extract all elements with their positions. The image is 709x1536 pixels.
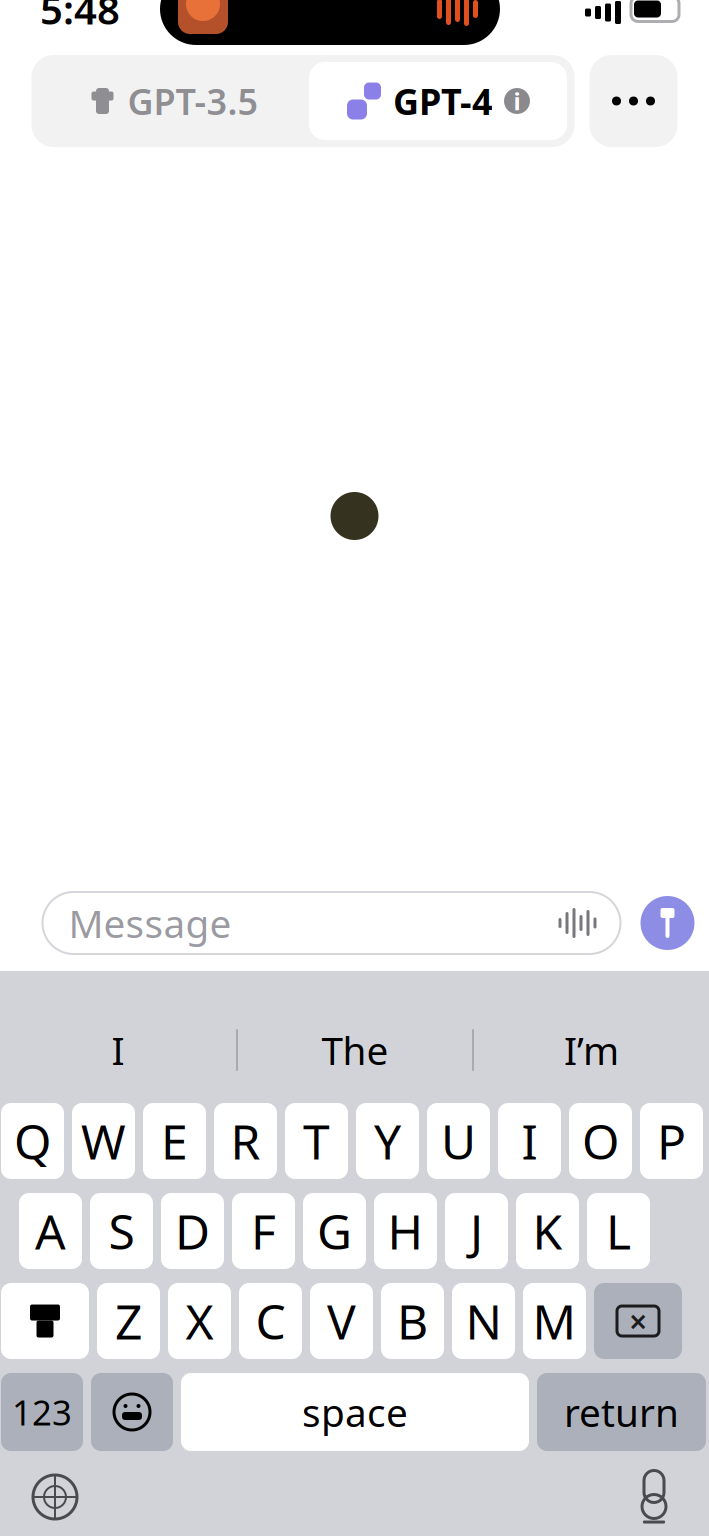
staticText: R: [230, 1109, 260, 1173]
button[interactable]: I’m: [474, 1007, 709, 1093]
button[interactable]: X: [168, 1283, 231, 1359]
button[interactable]: More options: [589, 55, 677, 147]
button[interactable]: R: [214, 1103, 277, 1179]
staticText: U: [441, 1109, 476, 1173]
button[interactable]: M: [523, 1283, 586, 1359]
button[interactable]: Z: [97, 1283, 160, 1359]
button[interactable]: Q: [1, 1103, 64, 1179]
button[interactable]: K: [516, 1193, 579, 1269]
staticText: O: [582, 1109, 619, 1173]
staticText: F: [251, 1199, 276, 1263]
button[interactable]: Dictate: [599, 1457, 709, 1536]
button[interactable]: U: [427, 1103, 490, 1179]
staticText: I’m: [564, 1024, 619, 1076]
button[interactable]: P: [640, 1103, 703, 1179]
button[interactable]: 123: [1, 1373, 83, 1451]
staticText: D: [175, 1199, 210, 1263]
button[interactable]: I: [0, 1007, 236, 1093]
staticText: W: [81, 1109, 126, 1173]
staticText: The: [321, 1024, 388, 1076]
button[interactable]: Emoji: [91, 1373, 173, 1451]
staticText: V: [327, 1289, 356, 1353]
staticText: Z: [115, 1289, 142, 1353]
button[interactable]: Y: [356, 1103, 419, 1179]
staticText: C: [255, 1289, 285, 1353]
staticText: P: [657, 1109, 686, 1173]
staticText: ×: [629, 1300, 647, 1342]
button[interactable]: H: [374, 1193, 437, 1269]
staticText: B: [397, 1289, 428, 1353]
staticText: return: [564, 1386, 679, 1438]
button[interactable]: N: [452, 1283, 515, 1359]
button[interactable]: The: [238, 1007, 472, 1093]
staticText: N: [465, 1289, 501, 1353]
button[interactable]: A: [19, 1193, 82, 1269]
button[interactable]: L: [587, 1193, 650, 1269]
staticText: I: [521, 1109, 537, 1173]
staticText: I: [111, 1024, 124, 1076]
button[interactable]: Shift: [1, 1283, 89, 1359]
staticText: T: [303, 1109, 330, 1173]
staticText: G: [317, 1199, 352, 1263]
button[interactable]: return: [537, 1373, 706, 1451]
staticText: GPT-4: [393, 77, 493, 125]
button[interactable]: T: [285, 1103, 348, 1179]
button[interactable]: Send: [636, 892, 698, 954]
staticText: H: [387, 1199, 423, 1263]
button[interactable]: GPT-3.5: [39, 62, 309, 140]
button[interactable]: S: [90, 1193, 153, 1269]
staticText: GPT-3.5: [127, 77, 258, 125]
button[interactable]: V: [310, 1283, 373, 1359]
button[interactable]: W: [72, 1103, 135, 1179]
staticText: K: [532, 1199, 562, 1263]
button[interactable]: GPT-4: [309, 62, 567, 140]
button[interactable]: D: [161, 1193, 224, 1269]
staticText: Message: [68, 897, 231, 949]
staticText: M: [532, 1289, 576, 1353]
staticText: X: [185, 1289, 213, 1353]
button[interactable]: G: [303, 1193, 366, 1269]
button[interactable]: B: [381, 1283, 444, 1359]
button[interactable]: C: [239, 1283, 302, 1359]
button[interactable]: J: [445, 1193, 508, 1269]
staticText: space: [302, 1386, 408, 1438]
staticText: S: [108, 1199, 134, 1263]
staticText: A: [35, 1199, 66, 1263]
button[interactable]: O: [569, 1103, 632, 1179]
staticText: J: [470, 1199, 483, 1263]
button[interactable]: space: [181, 1373, 529, 1451]
button[interactable]: F: [232, 1193, 295, 1269]
staticText: Q: [14, 1109, 51, 1173]
staticText: Y: [374, 1109, 401, 1173]
staticText: i: [513, 85, 520, 117]
button[interactable]: I: [498, 1103, 561, 1179]
button[interactable]: Delete: [594, 1283, 682, 1359]
button[interactable]: E: [143, 1103, 206, 1179]
staticText: 5:48: [40, 0, 120, 35]
staticText: 123: [12, 1389, 72, 1435]
button[interactable]: Next keyboard: [0, 1457, 110, 1536]
staticText: E: [161, 1109, 188, 1173]
staticText: L: [606, 1199, 631, 1263]
